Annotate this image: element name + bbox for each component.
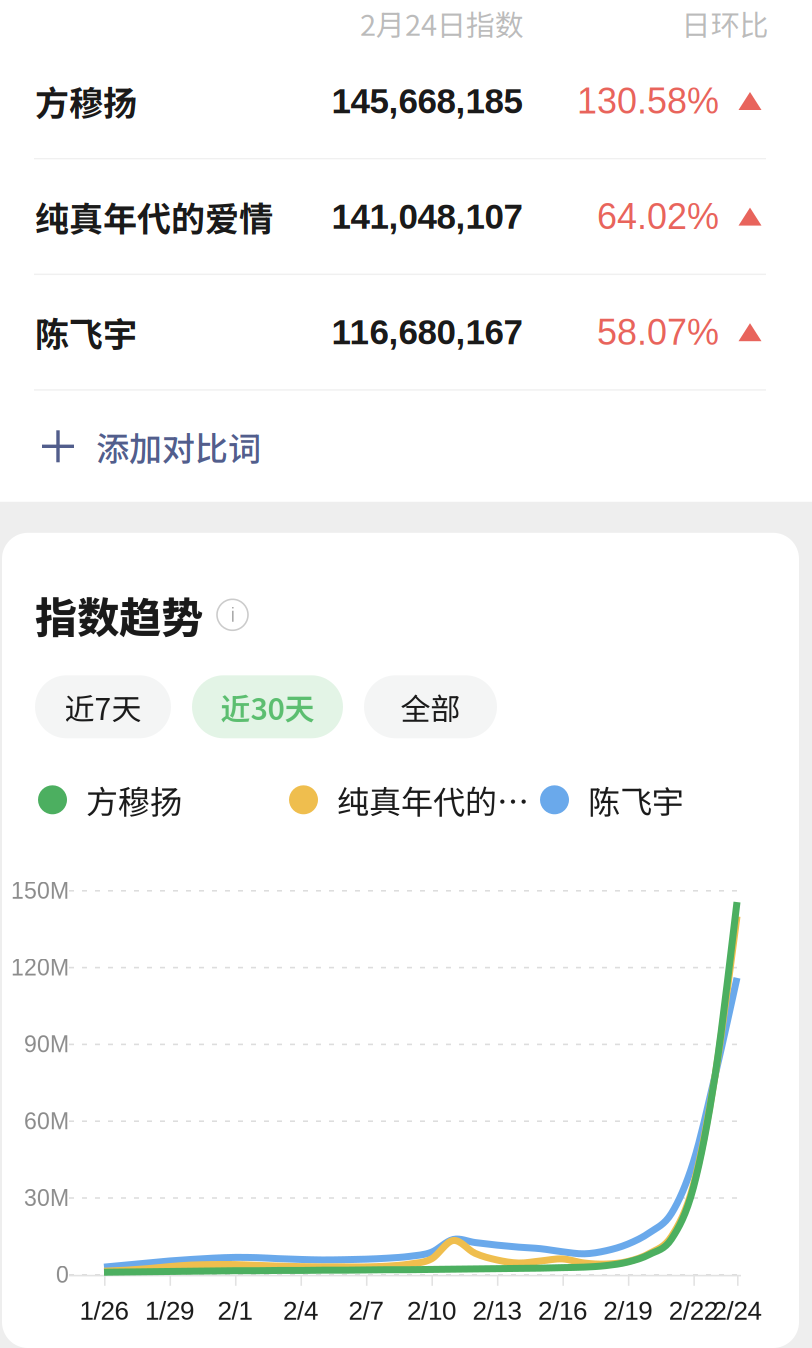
button[interactable]: 纯真年代的爱情 <box>0 160 812 274</box>
staticText: 60M <box>24 1108 69 1134</box>
button[interactable]: 近30天 <box>192 675 343 738</box>
staticText: i <box>230 604 234 626</box>
staticText: 0 <box>56 1262 69 1288</box>
staticText: 116,680,167 <box>331 313 522 352</box>
staticText: 陈飞宇 <box>588 777 684 823</box>
staticText: 145,668,185 <box>331 81 522 120</box>
staticText: 150M <box>11 878 69 904</box>
staticText: 90M <box>24 1032 69 1057</box>
button[interactable]: 陈飞宇 <box>0 275 812 389</box>
staticText: 64.02% <box>597 196 719 237</box>
button[interactable]: 近7天 <box>35 675 171 738</box>
staticText: 2/16 <box>538 1296 587 1325</box>
staticText: 纯真年代的… <box>337 777 529 823</box>
staticText: 30M <box>24 1185 69 1211</box>
button[interactable]: 方穆扬 <box>0 44 812 158</box>
staticText: 1/26 <box>79 1296 128 1325</box>
staticText: 日环比 <box>681 2 768 44</box>
staticText: 2/22 <box>669 1296 718 1325</box>
staticText: 141,048,107 <box>331 197 522 236</box>
staticText: 指数趋势 <box>35 584 203 645</box>
staticText: 2/4 <box>283 1296 318 1325</box>
staticText: 58.07% <box>597 312 719 352</box>
staticText: 2/7 <box>348 1296 383 1325</box>
button[interactable]: 添加对比词 <box>0 391 812 502</box>
staticText: 全部 <box>400 685 460 728</box>
staticText: 2/1 <box>217 1296 252 1325</box>
staticText: 陈飞宇 <box>35 308 137 357</box>
staticText: 2/24 <box>712 1296 761 1325</box>
staticText: 130.58% <box>577 81 719 121</box>
staticText: 近30天 <box>220 685 314 728</box>
staticText: 2月24日指数 <box>360 2 524 44</box>
staticText: 2/10 <box>407 1296 456 1325</box>
button[interactable]: 全部 <box>364 675 497 738</box>
staticText: 方穆扬 <box>86 777 182 823</box>
button[interactable]: 指数趋势说明 <box>217 599 248 630</box>
staticText: 方穆扬 <box>35 76 137 126</box>
staticText: 2/19 <box>603 1296 652 1325</box>
staticText: 添加对比词 <box>96 422 261 470</box>
staticText: 2/13 <box>472 1296 521 1325</box>
staticText: 1/29 <box>145 1296 194 1325</box>
staticText: 120M <box>11 955 69 980</box>
staticText: 纯真年代的爱情 <box>35 192 273 241</box>
staticText: 近7天 <box>64 685 141 728</box>
